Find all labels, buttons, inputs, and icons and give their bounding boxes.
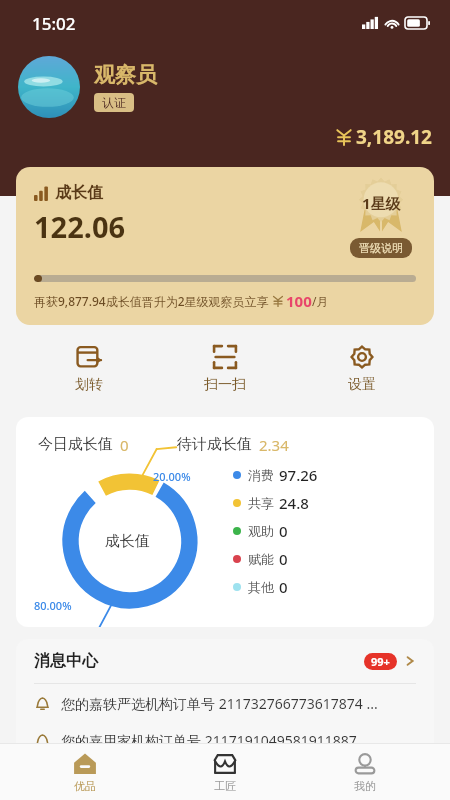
button[interactable]: Avatar bbox=[18, 56, 80, 118]
button[interactable]: 优品 bbox=[30, 749, 140, 795]
staticText: 待计成长值 bbox=[177, 435, 252, 454]
staticText: 您的嘉用家机构订单号 2117191049581911887 ... bbox=[61, 731, 372, 750]
staticText: 80.00% bbox=[34, 598, 72, 613]
staticText: 成长值 bbox=[55, 183, 103, 203]
staticText: 3,189.12 bbox=[356, 124, 432, 150]
staticText: 消息中心 bbox=[34, 651, 98, 671]
staticText: 0 bbox=[279, 549, 288, 569]
button[interactable]: 划转 bbox=[41, 340, 137, 398]
staticText: 我的 bbox=[354, 779, 376, 793]
button[interactable]: 我的 bbox=[310, 749, 420, 795]
staticText: 优品 bbox=[74, 779, 96, 793]
button[interactable]: 今日成长值 bbox=[16, 417, 434, 627]
staticText: 20.00% bbox=[153, 469, 191, 484]
staticText: 100 bbox=[286, 291, 312, 311]
staticText: 24.8 bbox=[279, 493, 309, 513]
staticText: 2.34 bbox=[259, 435, 289, 455]
other: More bbox=[404, 655, 416, 667]
staticText: 工匠 bbox=[214, 779, 236, 793]
staticText: 划转 bbox=[75, 376, 103, 394]
button[interactable]: 您的嘉用家机构订单号 2117191049581911887 ... bbox=[16, 722, 434, 759]
staticText: 1星级 bbox=[362, 193, 401, 213]
staticText: 0 bbox=[120, 435, 129, 455]
button[interactable]: 工匠 bbox=[170, 749, 280, 795]
staticText: 再获9,877.94成长值晋升为2星级观察员立享 bbox=[34, 293, 272, 309]
staticText: 122.06 bbox=[34, 207, 126, 246]
staticText: 您的嘉轶严选机构订单号 211732766773617874 ... bbox=[61, 694, 378, 713]
button[interactable]: 晋级说明 bbox=[350, 238, 412, 258]
staticText: 观察员 bbox=[94, 62, 157, 88]
staticText: 0 bbox=[279, 521, 288, 541]
staticText: 认证 bbox=[102, 95, 126, 110]
staticText: /月 bbox=[312, 293, 329, 309]
staticText: 共享 bbox=[248, 495, 274, 511]
staticText: 观助 bbox=[248, 523, 274, 539]
staticText: 99+ bbox=[371, 654, 390, 669]
button[interactable]: 您的嘉轶严选机构订单号 211732766773617874 ... bbox=[16, 684, 434, 722]
button[interactable]: 认证 bbox=[94, 93, 134, 112]
button[interactable]: 设置 bbox=[314, 340, 410, 398]
button[interactable]: 消息中心 bbox=[16, 639, 434, 683]
staticText: 消费 bbox=[248, 467, 274, 483]
staticText: 其他 bbox=[248, 579, 274, 595]
staticText: 0 bbox=[279, 577, 288, 597]
staticText: 赋能 bbox=[248, 551, 274, 567]
staticText: 97.26 bbox=[279, 465, 318, 485]
staticText: 15:02 bbox=[32, 12, 76, 35]
staticText: 扫一扫 bbox=[204, 376, 246, 394]
button[interactable]: 成长值 bbox=[16, 167, 434, 325]
staticText: 晋级说明 bbox=[359, 241, 403, 255]
staticText: 成长值 bbox=[105, 532, 150, 551]
staticText: 设置 bbox=[348, 376, 376, 394]
staticText: 今日成长值 bbox=[38, 435, 113, 454]
button[interactable]: 扫一扫 bbox=[177, 340, 273, 398]
